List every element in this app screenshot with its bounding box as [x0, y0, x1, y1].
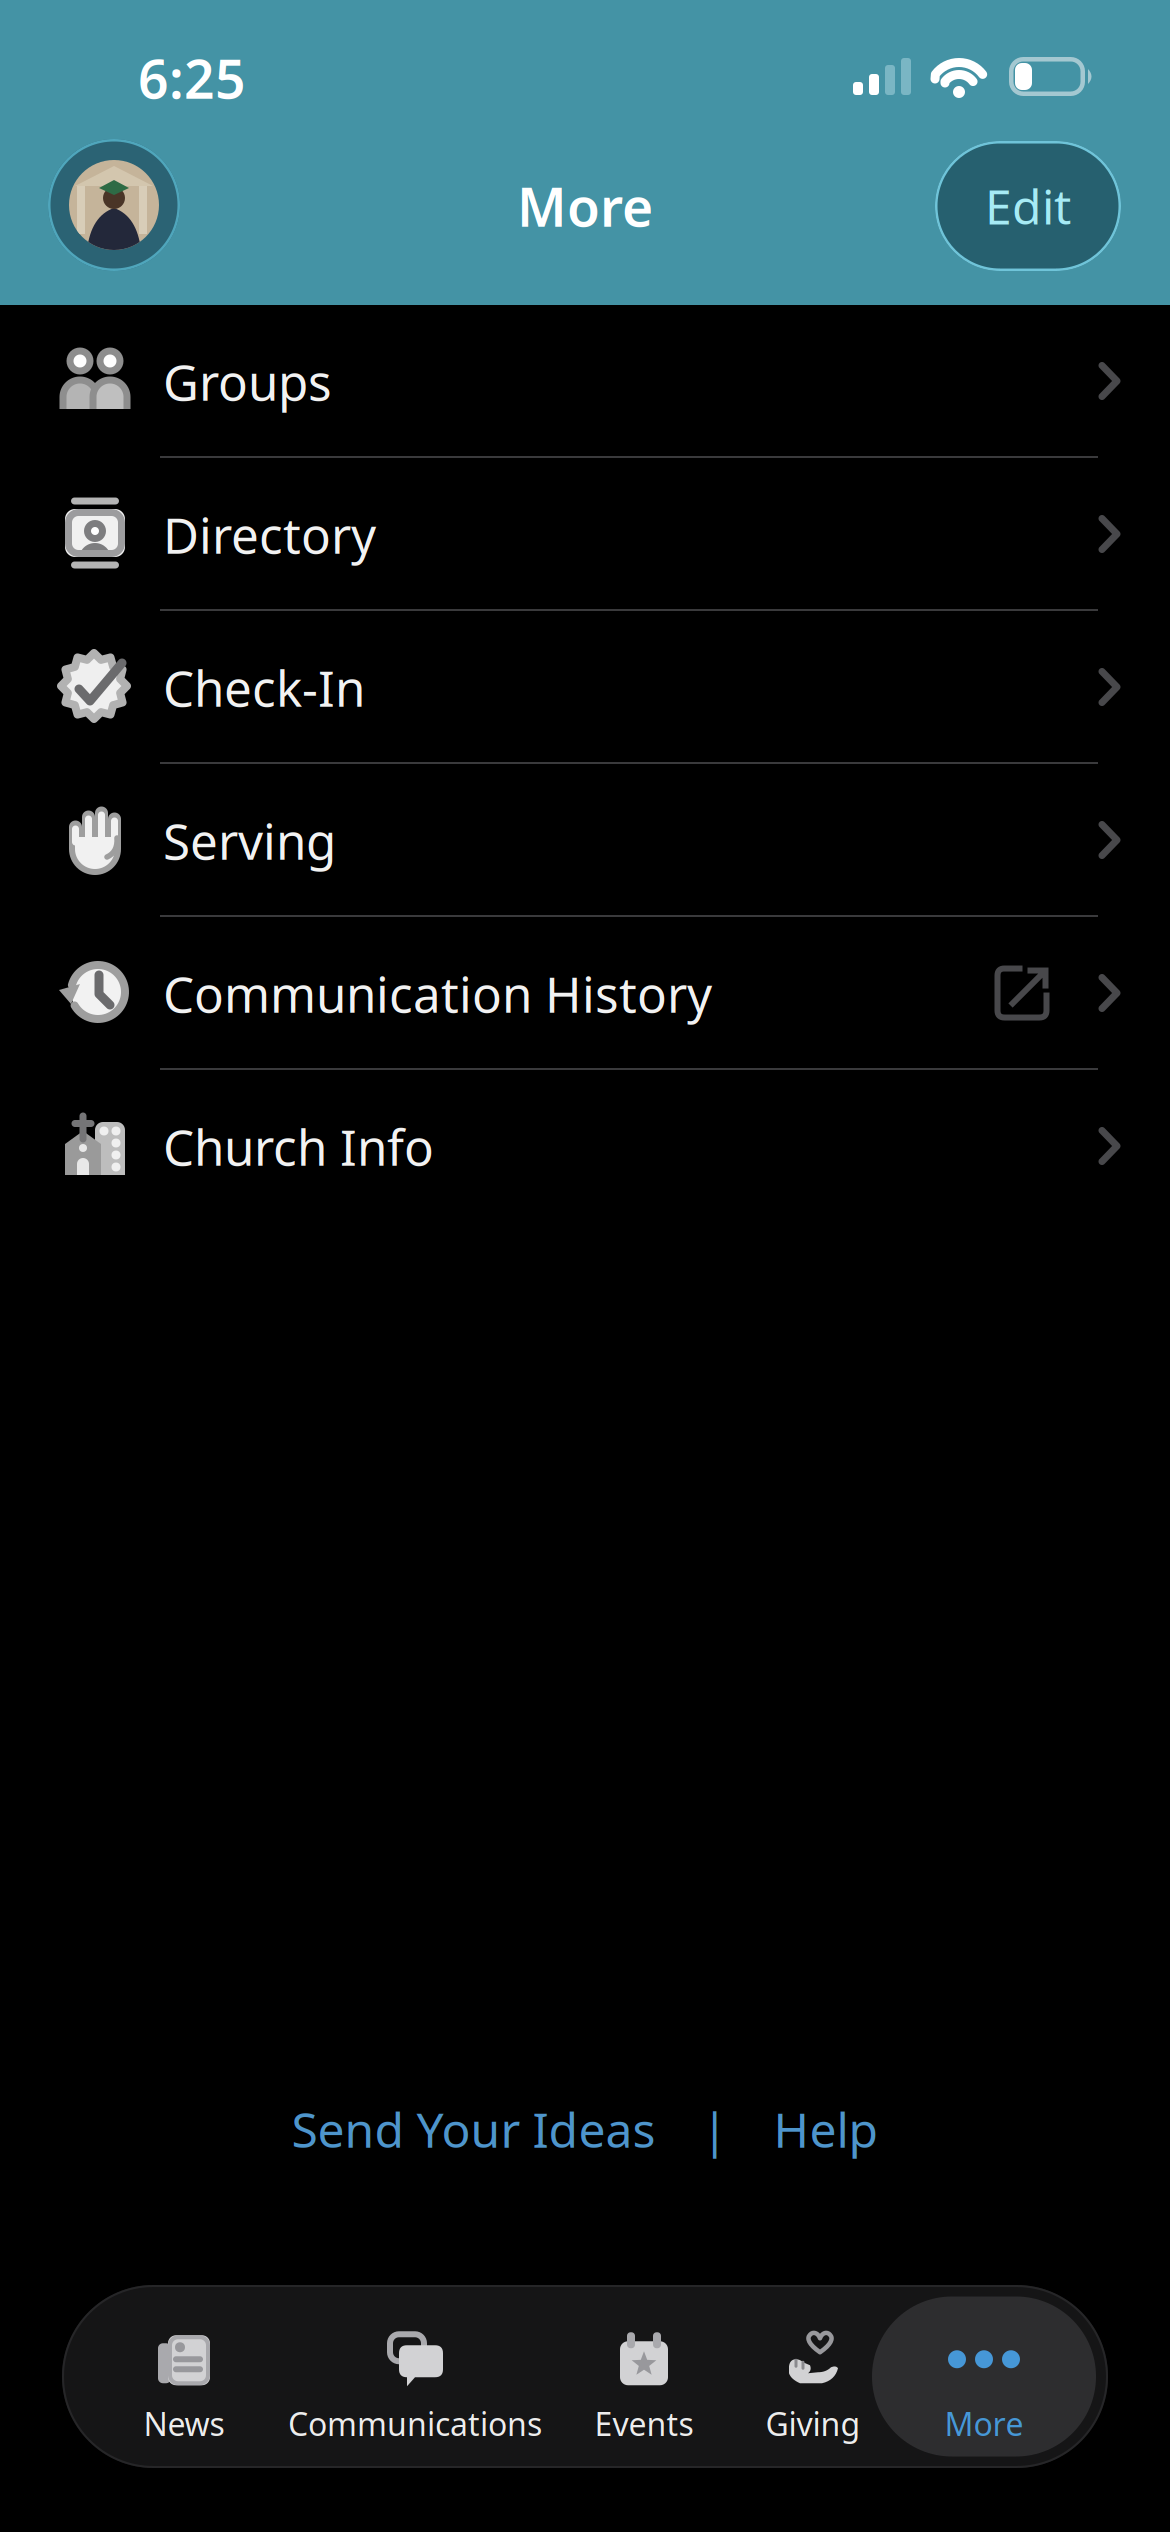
button[interactable]: Groups: [0, 305, 1170, 458]
staticText: Help: [773, 2097, 878, 2161]
staticText: Events: [594, 2402, 693, 2445]
staticText: Groups: [163, 349, 332, 414]
button[interactable]: Send Your Ideas: [291, 2097, 655, 2161]
staticText: 6:25: [138, 43, 246, 113]
staticText: Communications: [288, 2402, 542, 2445]
button[interactable]: Communications: [282, 2285, 548, 2468]
button[interactable]: Edit: [935, 141, 1121, 271]
staticText: Church Info: [163, 1114, 434, 1179]
staticText: |: [701, 2097, 727, 2161]
staticText: Serving: [163, 808, 336, 873]
button[interactable]: Directory: [0, 458, 1170, 611]
staticText: News: [143, 2402, 224, 2445]
staticText: Directory: [163, 502, 376, 567]
button[interactable]: Communication History: [0, 917, 1170, 1070]
button[interactable]: News: [86, 2285, 282, 2468]
staticText: More: [517, 171, 653, 241]
staticText: Giving: [765, 2402, 860, 2445]
button[interactable]: Help: [773, 2097, 878, 2161]
button[interactable]: Profile: [48, 139, 180, 271]
staticText: Send Your Ideas: [291, 2097, 655, 2161]
button[interactable]: Serving: [0, 764, 1170, 917]
button[interactable]: More: [872, 2285, 1096, 2468]
button[interactable]: Church Info: [0, 1070, 1170, 1223]
staticText: Check-In: [163, 655, 365, 720]
button[interactable]: Check-In: [0, 611, 1170, 764]
button[interactable]: Giving: [754, 2285, 872, 2468]
staticText: Edit: [985, 174, 1071, 238]
staticText: Communication History: [163, 961, 712, 1026]
button[interactable]: Events: [549, 2285, 739, 2468]
staticText: More: [944, 2402, 1023, 2445]
